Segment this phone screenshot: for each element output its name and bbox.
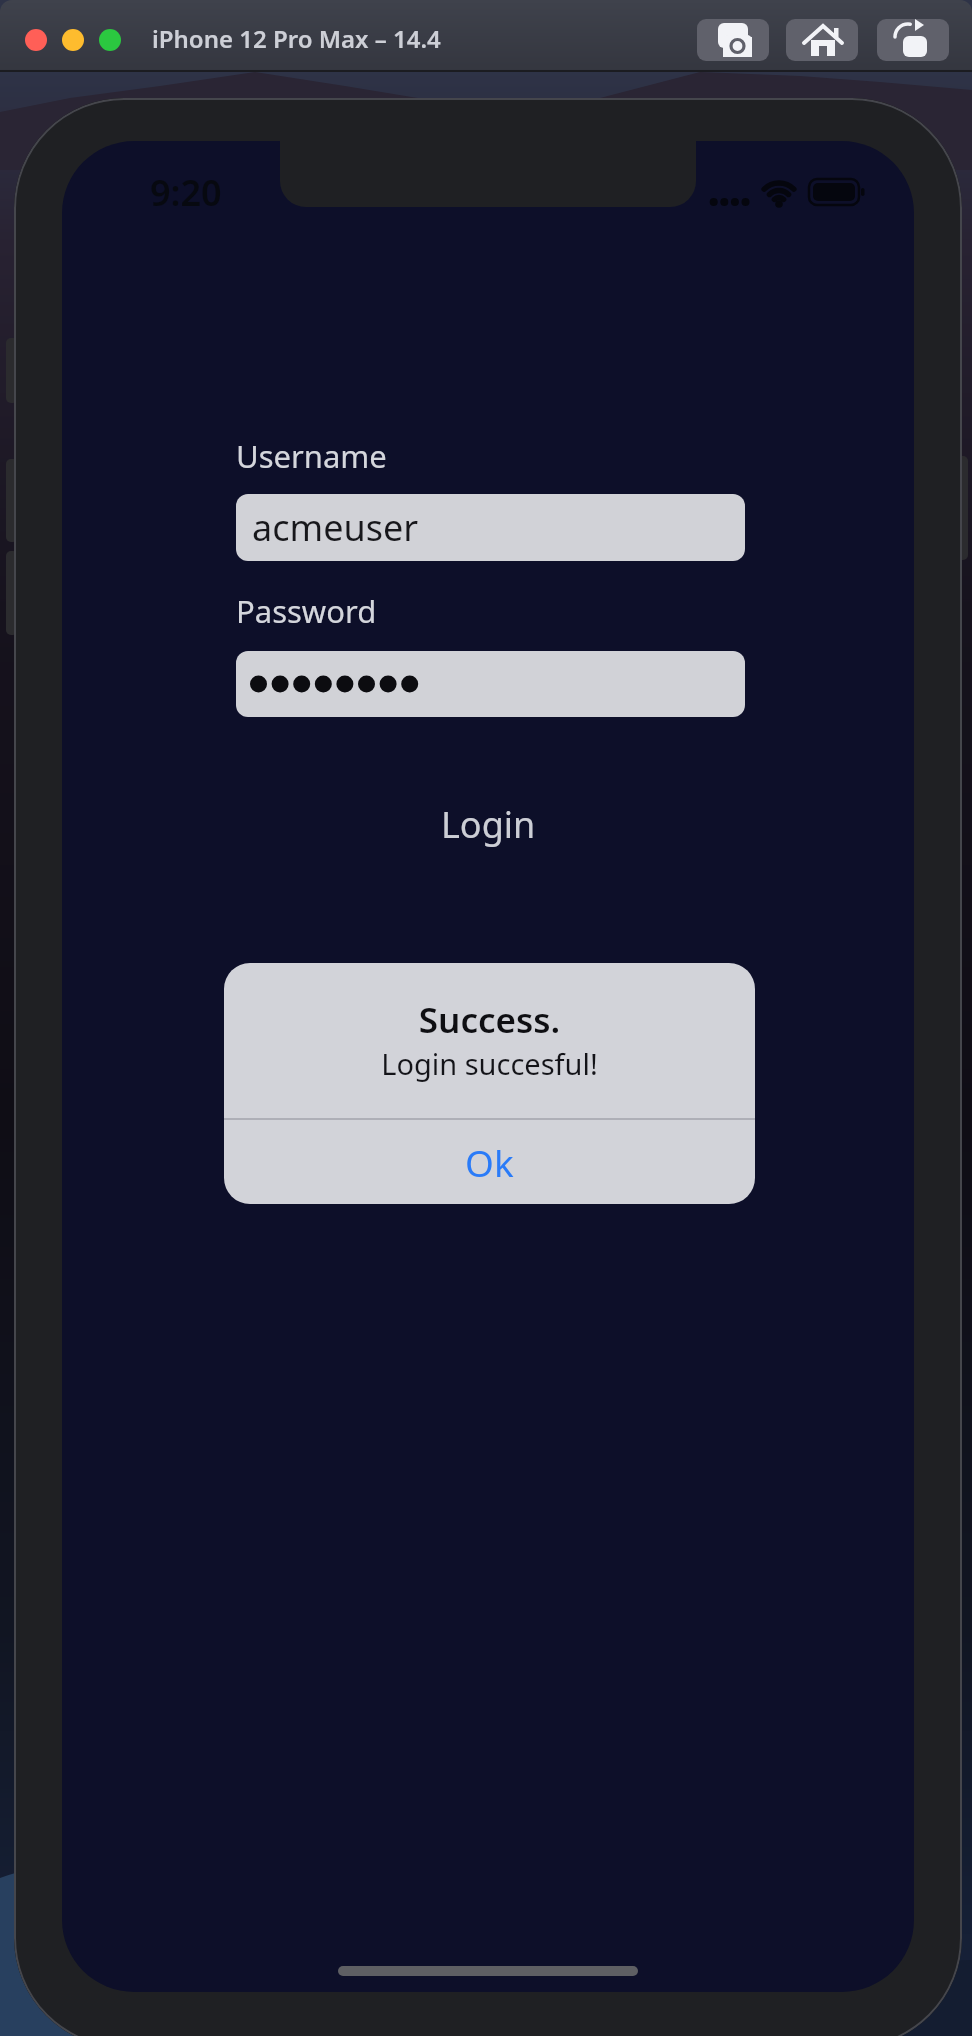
button[interactable]: Ok: [224, 1120, 755, 1204]
button[interactable]: [62, 29, 84, 51]
staticText: 9:20: [150, 168, 222, 217]
staticText: Success.: [224, 996, 755, 1044]
staticText: acmeuser: [252, 503, 419, 552]
button[interactable]: [877, 19, 949, 61]
staticText: Password: [236, 590, 377, 632]
button[interactable]: [697, 19, 769, 61]
button[interactable]: [786, 19, 858, 61]
button[interactable]: acmeuser: [236, 494, 745, 561]
staticText: Login succesful!: [224, 1044, 755, 1083]
staticText: Login: [441, 800, 536, 849]
staticText: Ok: [465, 1137, 514, 1187]
button[interactable]: [25, 29, 47, 51]
button[interactable]: Login: [429, 796, 548, 853]
staticText: Username: [236, 435, 387, 477]
button[interactable]: [236, 651, 745, 717]
staticText: iPhone 12 Pro Max – 14.4: [152, 22, 441, 55]
button[interactable]: [99, 29, 121, 51]
